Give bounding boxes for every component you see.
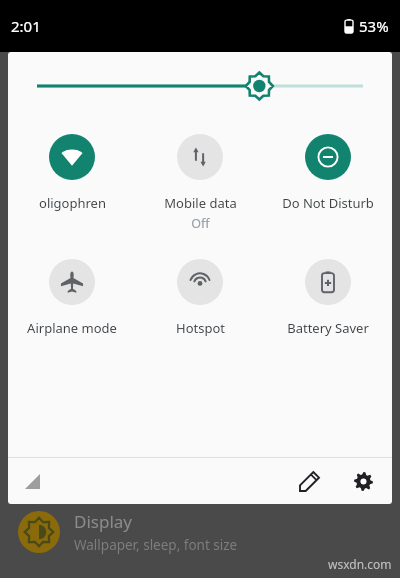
staticText: Hotspot: [176, 319, 225, 337]
staticText: Display: [74, 510, 132, 533]
button[interactable]: Signal strength: [14, 463, 50, 499]
staticText: 2:01: [11, 16, 41, 36]
staticText: Airplane mode: [27, 319, 117, 337]
button[interactable]: Settings: [344, 462, 382, 500]
staticText: oligophren: [39, 194, 106, 212]
staticText: Off: [191, 215, 210, 232]
staticText: Do Not Disturb: [282, 194, 374, 212]
button[interactable]: Mobile data: [136, 120, 264, 245]
button[interactable]: Do Not Disturb: [264, 120, 392, 245]
button[interactable]: oligophren: [8, 120, 136, 245]
staticText: Battery Saver: [287, 319, 369, 337]
button[interactable]: Hotspot: [136, 245, 264, 370]
staticText: 53%: [359, 16, 389, 36]
button[interactable]: Battery Saver: [264, 245, 392, 370]
button[interactable]: Airplane mode: [8, 245, 136, 370]
staticText: Wallpaper, sleep, font size: [74, 536, 238, 554]
staticText: wsxdn.com: [328, 556, 392, 572]
button[interactable]: Edit tiles: [290, 462, 328, 500]
staticText: Mobile data: [164, 194, 237, 212]
button[interactable]: Brightness: [8, 52, 392, 120]
